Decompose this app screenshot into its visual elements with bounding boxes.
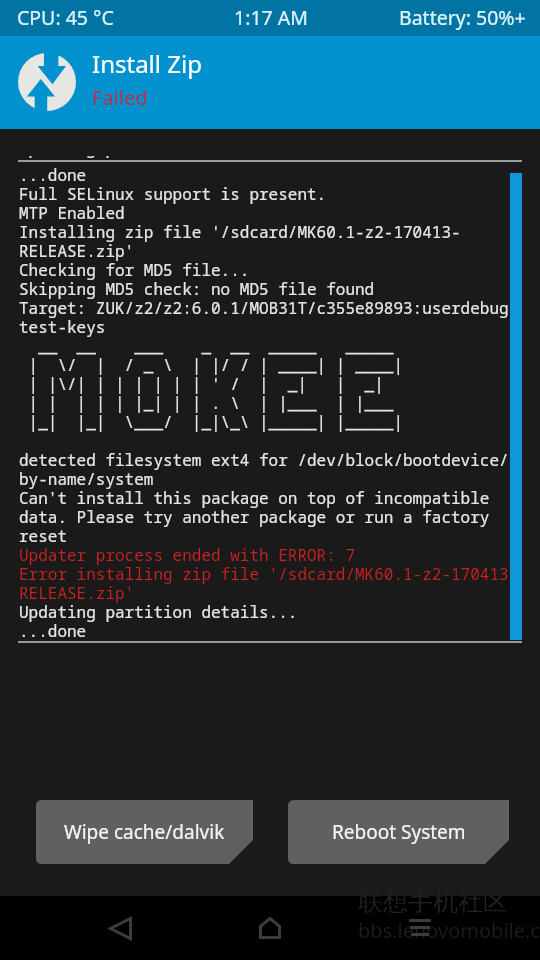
staticText: RELEASE.zip' [19,582,135,604]
staticText: Battery: 50%+ [399,4,526,31]
staticText: ...done [19,620,87,641]
staticText: Failed [92,84,148,111]
staticText: | | | | | |_| | | . \ | |___ | |___ [19,392,404,414]
staticText: 1:17 AM [234,4,308,31]
staticText: Updating partition details... [19,156,298,159]
staticText: 联想手机社区 [358,886,508,917]
staticText: detected filesystem ext4 for /dev/block/… [19,449,509,471]
staticText: bbs.lenovomobile.com [358,917,540,944]
staticText: Can't install this package on top of inc… [19,487,490,509]
staticText: Install Zip [92,47,202,80]
staticText: Checking for MD5 file... [19,259,250,281]
staticText: data. Please try another package or run … [19,506,490,528]
staticText: Updating partition details... [19,601,298,623]
staticText: | |\/| | | | | | | ' / | _| | _| [19,373,404,395]
staticText: __ __ ___ _ __ _____ _____ [19,335,404,357]
staticText: | \/ | / _ \ | |/ / | ____| | ____| [19,354,404,376]
button[interactable]: Back [96,904,144,952]
staticText: Full SELinux support is present. [19,183,327,205]
button[interactable]: Home [246,904,294,952]
staticText: CPU: 45 °C [17,4,114,31]
staticText: Error installing zip file '/sdcard/MK60.… [19,563,519,585]
staticText: by-name/system [19,468,154,490]
staticText: MTP Enabled [19,202,125,224]
staticText: test-keys [19,316,106,338]
staticText: Reboot System [332,819,466,845]
staticText: Updater process ended with ERROR: 7 [19,544,356,566]
button[interactable]: Wipe cache/dalvik [36,800,253,864]
button[interactable]: Recent apps [396,904,444,952]
staticText: Installing zip file '/sdcard/MK60.1-z2-1… [19,221,461,243]
staticText: Skipping MD5 check: no MD5 file found [19,278,375,300]
staticText: reset [19,525,68,547]
staticText: Wipe cache/dalvik [64,819,225,845]
staticText: ...done [19,164,87,186]
button[interactable]: Reboot System [288,800,509,864]
staticText: RELEASE.zip' [19,240,135,262]
staticText: |_| |_| \___/ |_|\_\ |_____| |_____| [19,411,404,433]
staticText: Target: ZUK/z2/z2:6.0.1/MOB31T/c355e8989… [19,297,519,319]
